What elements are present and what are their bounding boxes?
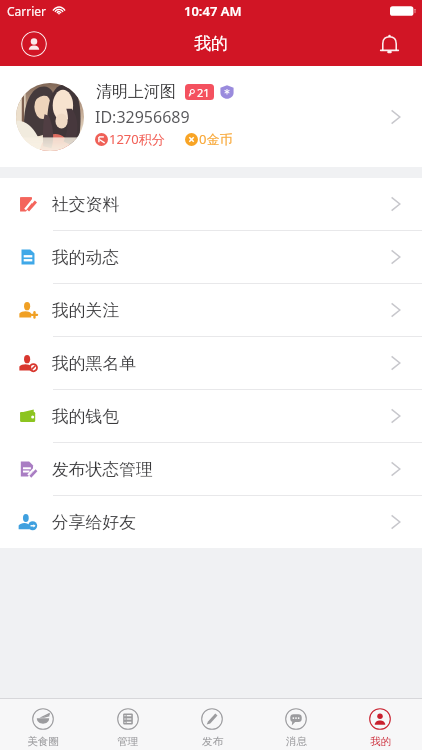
button[interactable]: 消息 (254, 699, 338, 750)
staticText: Carrier (7, 3, 47, 19)
staticText: 清明上河图 (96, 82, 176, 102)
button[interactable]: 清明上河图 (0, 66, 422, 167)
button[interactable]: 我的动态 (0, 231, 422, 283)
button[interactable]: 我的钱包 (0, 390, 422, 442)
staticText: 发布 (202, 735, 223, 748)
button[interactable]: Notifications (373, 28, 405, 60)
staticText: 我的 (370, 735, 391, 748)
staticText: 10:47 AM (184, 2, 242, 20)
staticText: 1270积分 (109, 130, 165, 148)
button[interactable]: 美食圈 (0, 699, 85, 750)
staticText: 分享给好友 (52, 512, 136, 533)
button[interactable]: 分享给好友 (0, 496, 422, 548)
button[interactable]: 管理 (85, 699, 170, 750)
staticText: 美食圈 (27, 735, 59, 748)
button[interactable]: 我的 (338, 699, 422, 750)
staticText: 我的钱包 (52, 406, 120, 427)
button[interactable]: 我的关注 (0, 284, 422, 336)
button[interactable]: 发布状态管理 (0, 443, 422, 495)
button[interactable]: 发布 (170, 699, 254, 750)
staticText: 我的关注 (52, 300, 120, 321)
staticText: 0金币 (199, 130, 233, 148)
staticText: 21 (197, 85, 210, 100)
staticText: 我的黑名单 (52, 353, 136, 374)
button[interactable]: 我的黑名单 (0, 337, 422, 389)
staticText: 发布状态管理 (52, 459, 153, 480)
staticText: 我的 (194, 33, 228, 54)
staticText: 管理 (117, 735, 138, 748)
staticText: 消息 (286, 735, 307, 748)
button[interactable]: My profile (21, 31, 47, 57)
staticText: 我的动态 (52, 247, 120, 268)
staticText: ID:32956689 (95, 106, 190, 128)
staticText: 社交资料 (52, 194, 120, 215)
button[interactable]: 社交资料 (0, 178, 422, 230)
